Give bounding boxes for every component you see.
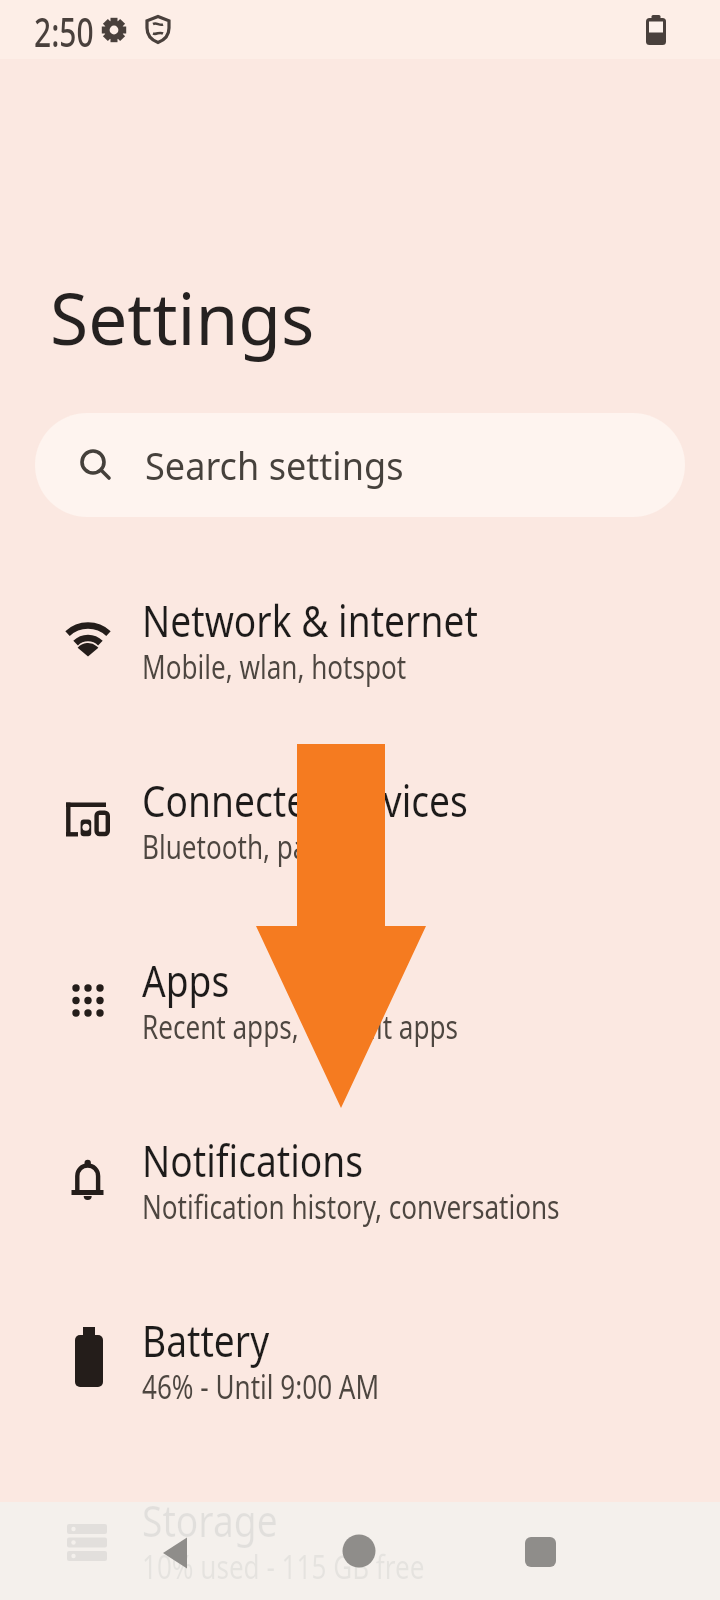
button[interactable] [327,1519,391,1583]
staticText: Apps [142,950,230,1010]
staticText: Notifications [142,1130,363,1190]
button[interactable]: Notifications [0,1090,720,1270]
staticText: Recent apps, default apps [142,1005,458,1049]
staticText: Bluetooth, pairing [142,825,364,869]
staticText: 2:50 [34,4,94,58]
button[interactable]: Storage [0,1450,720,1600]
button[interactable] [146,1521,210,1585]
staticText: 10% used - 115 GB free [142,1545,425,1589]
staticText: Connected devices [142,770,468,830]
staticText: Settings [50,268,314,366]
button[interactable]: Battery [0,1270,720,1450]
staticText: Search settings [145,439,404,491]
button[interactable]: Connected devices [0,730,720,910]
staticText: 46% - Until 9:00 AM [142,1365,379,1409]
staticText: Battery [142,1310,270,1370]
staticText: Notification history, conversations [142,1185,560,1229]
staticText: Mobile, wlan, hotspot [142,645,407,689]
button[interactable]: Apps [0,910,720,1090]
staticText: Storage [142,1490,278,1550]
button[interactable]: Network & internet [0,550,720,730]
button[interactable]: Search settings [35,413,685,517]
staticText: Network & internet [142,590,478,650]
button[interactable] [509,1520,573,1584]
